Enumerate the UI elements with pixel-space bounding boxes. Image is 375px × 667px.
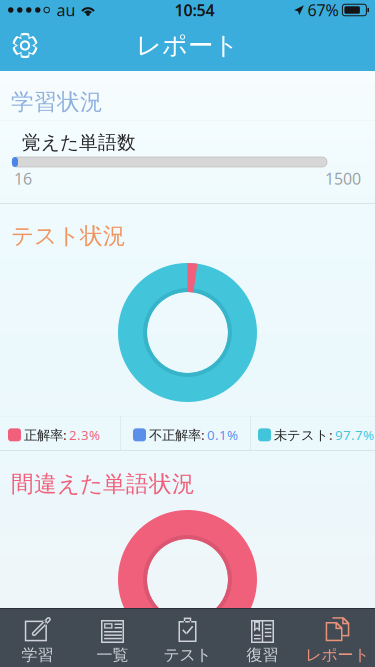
staticText: 0.1% (207, 426, 238, 444)
staticText: 1500 (325, 168, 361, 189)
staticText: 10:54 (174, 0, 214, 21)
staticText: テスト状況 (11, 222, 126, 250)
staticText: レポート (136, 30, 239, 61)
staticText: 67% (307, 0, 338, 21)
staticText: 2.3% (69, 426, 100, 444)
staticText: 正解率: (24, 426, 67, 444)
button[interactable]: 復習 (225, 608, 300, 667)
staticText: au (56, 0, 75, 21)
staticText: テスト (163, 645, 211, 665)
staticText: 復習 (246, 645, 278, 665)
staticText: レポート (305, 645, 369, 665)
staticText: 97.7% (335, 426, 374, 444)
staticText: 一覧 (96, 645, 128, 665)
staticText: 未テスト: (274, 426, 333, 444)
button[interactable]: 一覧 (75, 608, 150, 667)
button[interactable]: Settings (0, 20, 50, 71)
staticText: 学習状況 (11, 88, 103, 116)
staticText: 間違えた単語状況 (11, 470, 195, 498)
button[interactable]: 学習 (0, 608, 75, 667)
button[interactable]: レポート (300, 608, 375, 667)
button[interactable]: テスト (150, 608, 225, 667)
staticText: 16 (14, 168, 32, 189)
staticText: 覚えた単語数 (22, 131, 136, 154)
staticText: 不正解率: (149, 426, 205, 444)
staticText: 学習 (21, 645, 53, 665)
